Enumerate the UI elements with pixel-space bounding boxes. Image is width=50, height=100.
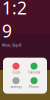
staticText: Phone xyxy=(29,85,39,89)
staticText: Mon, Sep 8 xyxy=(2,42,21,48)
staticText: 1:29 xyxy=(2,0,27,42)
staticText: Clock xyxy=(12,71,19,74)
staticText: Settings xyxy=(10,85,21,89)
staticText: Calendar xyxy=(28,71,40,74)
